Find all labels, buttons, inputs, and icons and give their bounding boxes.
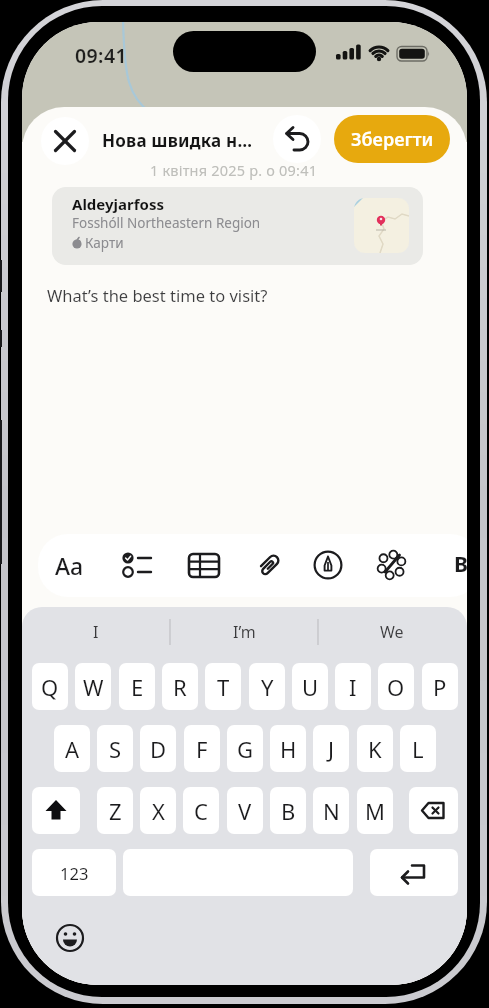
staticText: G bbox=[237, 734, 254, 764]
button[interactable]: I’m bbox=[170, 617, 318, 647]
staticText: A bbox=[65, 734, 80, 764]
button[interactable]: I bbox=[22, 617, 170, 647]
staticText: What’s the best time to visit? bbox=[47, 284, 268, 306]
staticText: S bbox=[109, 734, 122, 764]
staticText: X bbox=[152, 796, 165, 826]
staticText: J bbox=[328, 734, 335, 764]
button[interactable]: D bbox=[140, 725, 176, 772]
button[interactable]: S bbox=[97, 725, 133, 772]
button[interactable] bbox=[114, 542, 160, 588]
button[interactable] bbox=[273, 115, 321, 163]
button[interactable]: T bbox=[205, 663, 241, 710]
button[interactable]: We bbox=[318, 617, 466, 647]
button[interactable]: X bbox=[140, 787, 176, 834]
button[interactable] bbox=[409, 787, 458, 834]
staticText: O bbox=[387, 672, 405, 702]
button[interactable]: H bbox=[270, 725, 306, 772]
button[interactable] bbox=[181, 542, 227, 588]
button[interactable]: U bbox=[292, 663, 328, 710]
staticText: 123 bbox=[60, 862, 89, 884]
button[interactable] bbox=[369, 542, 415, 588]
staticText: 09:41 bbox=[75, 42, 127, 69]
staticText: Aa bbox=[55, 550, 84, 581]
button[interactable]: O bbox=[378, 663, 414, 710]
button[interactable]: Aa bbox=[48, 546, 90, 584]
button[interactable]: M bbox=[357, 787, 393, 834]
button[interactable] bbox=[370, 849, 458, 896]
button[interactable]: E bbox=[119, 663, 155, 710]
button[interactable]: V bbox=[227, 787, 263, 834]
staticText: F bbox=[196, 734, 208, 764]
staticText: Q bbox=[41, 672, 59, 702]
button[interactable]: I bbox=[335, 663, 371, 710]
button[interactable] bbox=[41, 117, 89, 165]
button[interactable]: Z bbox=[97, 787, 133, 834]
button[interactable]: 123 bbox=[32, 849, 116, 896]
staticText: B bbox=[281, 796, 296, 826]
staticText: D bbox=[150, 734, 167, 764]
button[interactable] bbox=[246, 542, 292, 588]
button[interactable]: F bbox=[184, 725, 220, 772]
button[interactable]: B bbox=[270, 787, 306, 834]
button[interactable]: N bbox=[313, 787, 349, 834]
button[interactable]: Зберегти bbox=[334, 115, 450, 163]
button[interactable] bbox=[305, 542, 351, 588]
staticText: H bbox=[280, 734, 297, 764]
button[interactable]: R bbox=[162, 663, 198, 710]
staticText: We bbox=[380, 621, 404, 643]
staticText: Fosshóll Northeastern Region bbox=[72, 214, 261, 232]
staticText: V bbox=[238, 796, 252, 826]
button[interactable]: P bbox=[422, 663, 458, 710]
button[interactable]: G bbox=[227, 725, 263, 772]
staticText: I bbox=[93, 621, 99, 643]
staticText: P bbox=[433, 672, 447, 702]
button[interactable]: J bbox=[313, 725, 349, 772]
staticText: N bbox=[323, 796, 340, 826]
staticText: 1 квітня 2025 р. о 09:41 bbox=[150, 160, 318, 180]
staticText: Aldeyjarfoss bbox=[72, 194, 164, 214]
staticText: T bbox=[217, 672, 230, 702]
staticText: M bbox=[365, 796, 385, 826]
button[interactable]: L bbox=[400, 725, 436, 772]
staticText: I’m bbox=[233, 621, 256, 643]
staticText: Зберегти bbox=[351, 127, 434, 152]
button[interactable]: C bbox=[183, 787, 219, 834]
staticText: R bbox=[173, 672, 187, 702]
staticText: Карти bbox=[85, 234, 124, 252]
button[interactable]: A bbox=[54, 725, 90, 772]
staticText: K bbox=[368, 734, 382, 764]
staticText: Нова швидка н… bbox=[102, 129, 253, 152]
button[interactable]: Y bbox=[249, 663, 285, 710]
staticText: W bbox=[83, 672, 104, 702]
staticText: Z bbox=[109, 796, 122, 826]
button[interactable]: K bbox=[357, 725, 393, 772]
staticText: U bbox=[302, 672, 319, 702]
staticText: E bbox=[131, 672, 144, 702]
staticText: Y bbox=[261, 672, 274, 702]
staticText: L bbox=[412, 734, 424, 764]
staticText: B bbox=[454, 550, 467, 579]
button[interactable]: W bbox=[75, 663, 111, 710]
button[interactable]: Aldeyjarfoss bbox=[52, 187, 423, 265]
staticText: C bbox=[194, 796, 208, 826]
button[interactable]: Q bbox=[32, 663, 68, 710]
button[interactable] bbox=[55, 923, 85, 953]
button[interactable] bbox=[32, 787, 80, 834]
staticText: I bbox=[349, 672, 357, 702]
